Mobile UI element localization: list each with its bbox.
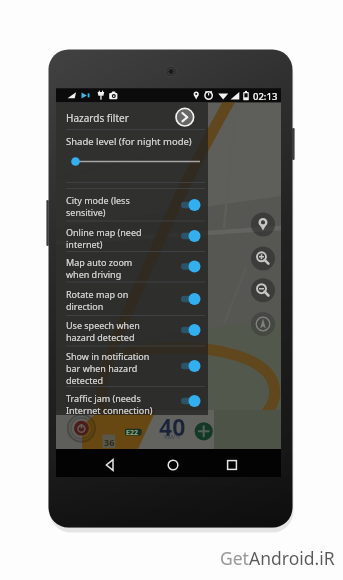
button[interactable]: Back — [91, 449, 127, 477]
staticText: Map auto zoom — [66, 256, 133, 268]
staticText: Shade level (for night mode) — [66, 135, 192, 148]
staticText: Online map (need — [66, 226, 142, 238]
button[interactable]: Recents — [212, 449, 248, 477]
staticText: direction — [66, 300, 104, 312]
button[interactable]: Hazards filter — [66, 111, 196, 129]
button[interactable]: Home — [153, 449, 189, 477]
button[interactable]: City mode (less — [66, 194, 176, 218]
staticText: Use speech when — [66, 319, 140, 331]
button[interactable]: Map auto zoom — [66, 256, 176, 280]
staticText: Show in notification — [66, 350, 150, 362]
staticText: км/ч — [164, 432, 180, 442]
button[interactable]: Use speech when — [66, 319, 176, 343]
staticText: hazard detected — [66, 331, 135, 343]
staticText: Internet connection) — [66, 404, 153, 416]
staticText: internet) — [66, 238, 103, 250]
staticText: Hazards filter — [66, 111, 129, 125]
staticText: detected — [66, 374, 104, 386]
staticText: Android.iR — [249, 546, 335, 570]
button[interactable]: Show in notification — [66, 350, 176, 386]
staticText: 40 — [159, 411, 186, 442]
button[interactable]: Traffic jam (needs — [66, 392, 176, 416]
staticText: Traffic jam (needs — [66, 392, 141, 404]
staticText: 36 — [104, 436, 115, 448]
staticText: Get — [220, 546, 249, 570]
staticText: Rotate map on — [66, 288, 129, 300]
staticText: bar when hazard — [66, 362, 138, 374]
staticText: E22 — [126, 428, 138, 438]
staticText: 02:13 — [253, 90, 278, 103]
staticText: when driving — [66, 268, 122, 280]
button[interactable]: Online map (need — [66, 226, 176, 250]
button[interactable]: Rotate map on — [66, 288, 176, 312]
staticText: sensitive) — [66, 206, 106, 218]
staticText: City mode (less — [66, 194, 130, 206]
